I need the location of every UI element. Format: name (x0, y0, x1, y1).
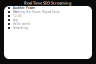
staticText: Watching the Future Digital Voice (13, 10, 60, 14)
staticText: Sep (13, 18, 18, 22)
staticText: Something (13, 26, 28, 30)
staticText: Real Time SEO Streaming (24, 0, 72, 6)
staticText: 12:45 (13, 14, 22, 18)
staticText: Hello world (13, 22, 30, 26)
staticText: Audible Power (13, 6, 35, 10)
